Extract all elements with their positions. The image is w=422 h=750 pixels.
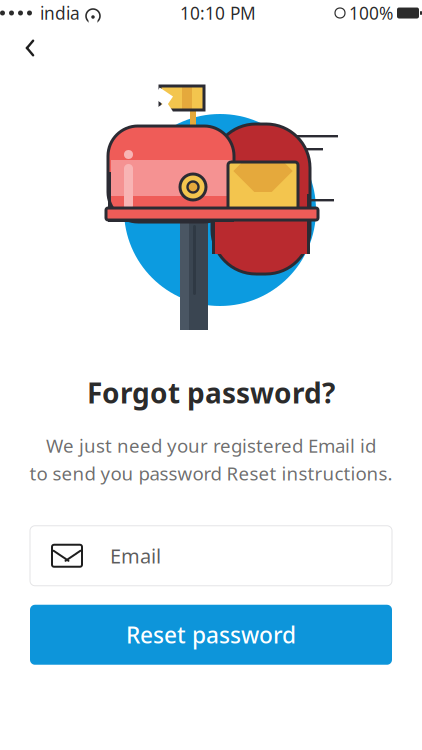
staticText: Email: [110, 542, 161, 569]
staticText: to send you password Reset instructions.: [29, 461, 392, 486]
staticText: Forgot password?: [87, 374, 335, 411]
button[interactable]: Reset password: [30, 605, 392, 665]
staticText: Reset password: [126, 620, 296, 650]
button[interactable]: Email: [30, 526, 392, 586]
staticText: We just need your registered Email id: [46, 433, 376, 458]
staticText: india: [40, 1, 80, 24]
staticText: 100%: [349, 1, 393, 24]
button[interactable]: Back: [8, 28, 52, 68]
staticText: 10:10 PM: [180, 1, 256, 24]
